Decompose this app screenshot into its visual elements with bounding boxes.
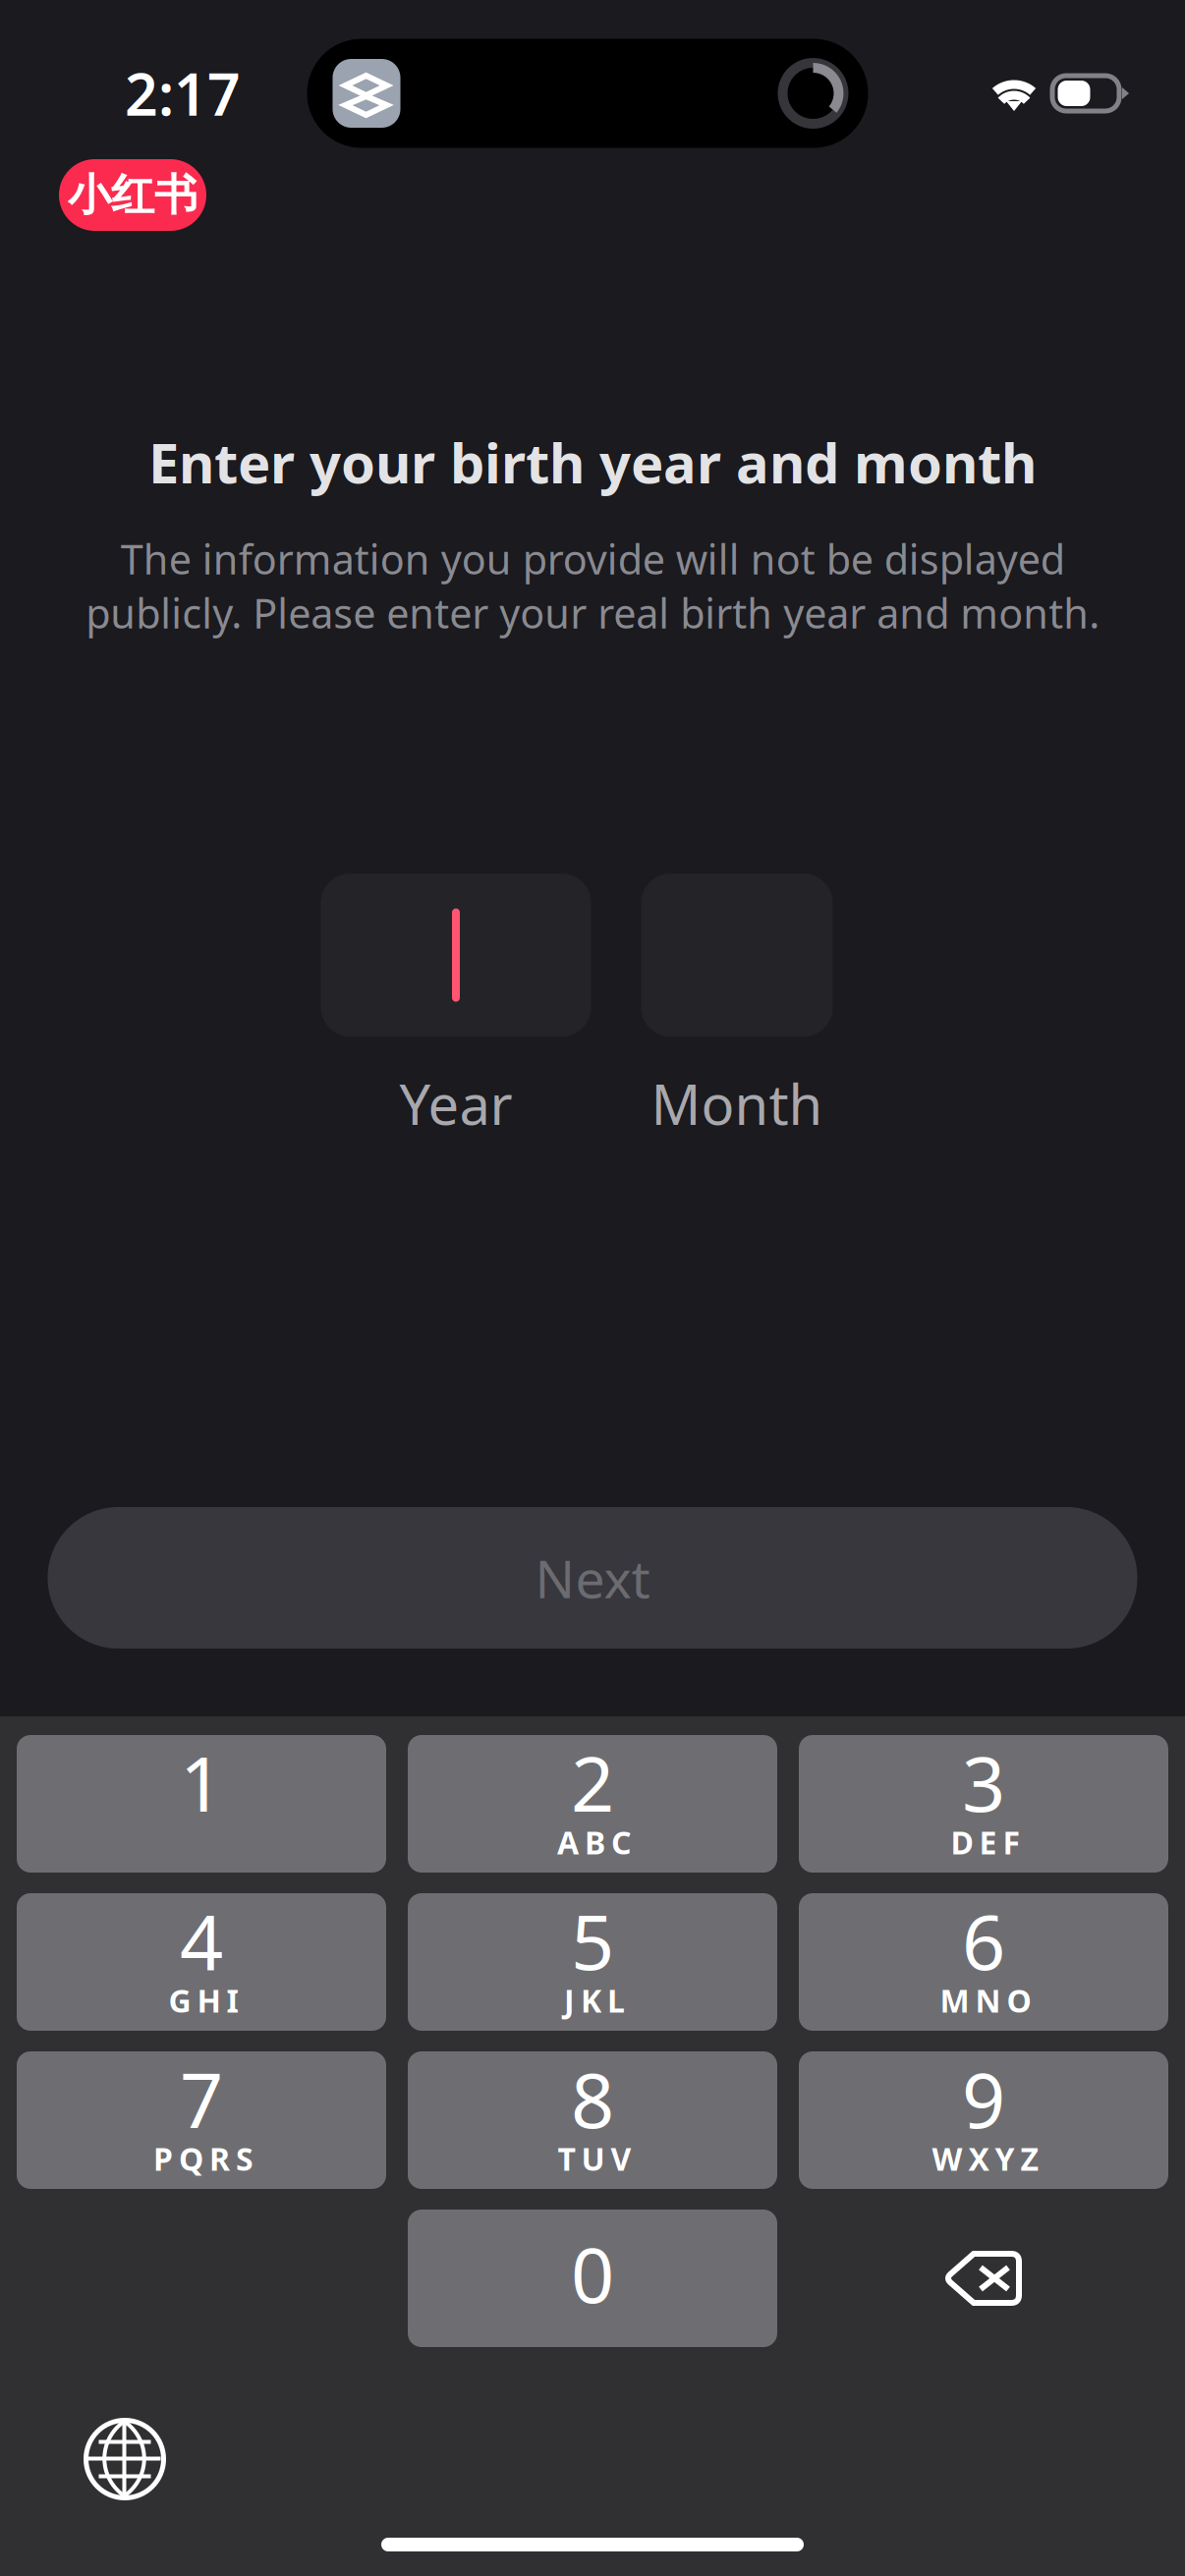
button[interactable]: 4 <box>17 1893 386 2031</box>
staticText: 4 <box>180 1890 223 1991</box>
staticText: JKL <box>564 1979 625 2021</box>
staticText: Year <box>399 1067 512 1140</box>
button[interactable]: 9 <box>799 2051 1168 2189</box>
staticText: Next <box>535 1543 650 1613</box>
button[interactable]: Delete <box>799 2210 1168 2347</box>
button[interactable]: Year <box>321 874 591 1037</box>
staticText: 3 <box>962 1732 1005 1833</box>
button[interactable]: 1 <box>17 1735 386 1873</box>
staticText: WXYZ <box>932 2138 1039 2179</box>
staticText: MNO <box>940 1979 1031 2021</box>
staticText: The information you provide will not be … <box>85 532 1100 640</box>
staticText: Month <box>651 1067 823 1140</box>
button[interactable]: 2 <box>408 1735 777 1873</box>
button[interactable]: Next <box>48 1507 1137 1649</box>
staticText: 7 <box>180 2048 223 2149</box>
staticText: 5 <box>571 1890 614 1991</box>
staticText: 8 <box>571 2048 614 2149</box>
button[interactable]: 6 <box>799 1893 1168 2031</box>
staticText: 小红书 <box>68 168 197 222</box>
staticText: 1 <box>180 1732 223 1833</box>
staticText: GHI <box>169 1979 238 2021</box>
staticText: PQRS <box>153 2138 254 2179</box>
staticText: 9 <box>962 2048 1005 2149</box>
button[interactable]: Next keyboard <box>60 2394 190 2524</box>
staticText: 2:17 <box>125 55 241 132</box>
staticText: Enter your birth year and month <box>148 425 1037 498</box>
staticText: 6 <box>962 1890 1005 1991</box>
button[interactable]: 8 <box>408 2051 777 2189</box>
button[interactable]: 3 <box>799 1735 1168 1873</box>
staticText: ABC <box>557 1821 632 1863</box>
staticText: DEF <box>951 1821 1020 1863</box>
staticText: 0 <box>571 2223 614 2324</box>
button[interactable]: 0 <box>408 2210 777 2347</box>
staticText: 2 <box>571 1732 614 1833</box>
button[interactable]: 7 <box>17 2051 386 2189</box>
button[interactable]: 5 <box>408 1893 777 2031</box>
staticText: TUV <box>558 2138 631 2179</box>
